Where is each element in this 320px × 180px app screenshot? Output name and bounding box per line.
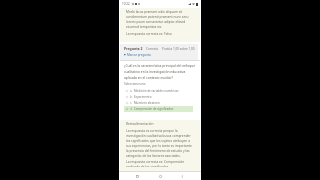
button[interactable]: b. xyxy=(124,94,193,100)
staticText: Muestreo aleatorio xyxy=(134,101,160,105)
staticText: Pregunta 2 xyxy=(124,46,143,51)
staticText: ¿Cuál es la característica principal del… xyxy=(124,63,196,80)
staticText: La respuesta correcta es: Falso xyxy=(126,32,172,36)
staticText: Puntúa 1,00 sobre 1,00 xyxy=(162,47,195,51)
staticText: b. xyxy=(130,95,133,99)
staticText: 10:22 xyxy=(122,2,130,6)
button[interactable]: d. xyxy=(124,106,193,112)
staticText: Seleccione una: xyxy=(124,82,146,86)
staticText: c. xyxy=(130,101,133,105)
button[interactable]: Recents xyxy=(133,172,142,180)
button[interactable]: a. xyxy=(124,88,193,94)
staticText: a. xyxy=(130,89,133,93)
staticText: Morbi lacus praesent odio aliquam sit co… xyxy=(126,10,196,29)
staticText: La respuesta correcta es: Comprensión pr… xyxy=(126,160,195,167)
staticText: La respuesta es correcta porque la inves… xyxy=(126,129,195,158)
button[interactable]: Back xyxy=(178,172,187,180)
button[interactable]: Home xyxy=(156,172,165,180)
staticText: Correcta xyxy=(146,47,159,51)
staticText: d. xyxy=(130,107,133,111)
staticText: Medición de variables numéricas xyxy=(134,89,179,93)
staticText: Experimento xyxy=(134,95,152,99)
button[interactable]: c. xyxy=(124,100,193,106)
staticText: Marcar pregunta xyxy=(127,53,151,57)
staticText: Retroalimentación xyxy=(126,122,154,126)
staticText: Comprensión de significados xyxy=(134,107,174,111)
